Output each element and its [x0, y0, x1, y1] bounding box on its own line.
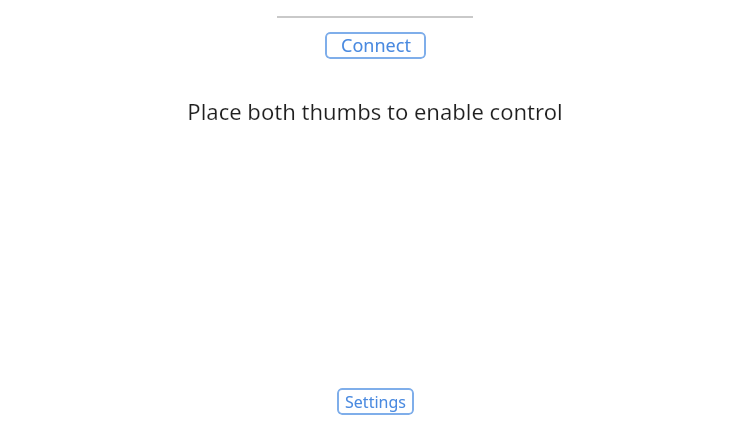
staticText: Connect [341, 33, 411, 58]
button[interactable]: Settings [337, 388, 414, 415]
staticText: Place both thumbs to enable control [187, 96, 563, 126]
button[interactable]: Connect [325, 32, 426, 59]
staticText: Settings [345, 391, 406, 413]
